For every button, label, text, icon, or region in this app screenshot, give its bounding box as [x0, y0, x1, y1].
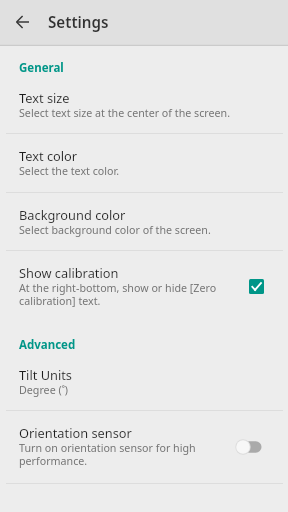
staticText: Orientation sensor — [19, 424, 132, 441]
staticText: Select the text color. — [19, 164, 120, 179]
staticText: At the right-bottom, show or hide [Zero … — [19, 281, 217, 308]
button[interactable]: Text size — [0, 78, 288, 133]
button[interactable]: Tilt Units — [0, 355, 288, 410]
staticText: Turn on orientation sensor for high perf… — [19, 441, 196, 468]
staticText: Background color — [19, 206, 126, 223]
staticText: General — [19, 60, 64, 76]
button[interactable]: Orientation sensor — [0, 411, 288, 483]
button[interactable]: Show calibration — [0, 251, 288, 324]
button[interactable]: Background color — [0, 193, 288, 250]
staticText: Show calibration — [19, 264, 119, 281]
button[interactable]: Text color — [0, 134, 288, 192]
staticText: Degree (˚) — [19, 383, 69, 398]
button[interactable]: Show calibration checkbox — [246, 276, 266, 296]
staticText: Select background color of the screen. — [19, 223, 211, 238]
staticText: Text color — [19, 147, 78, 164]
staticText: Select text size at the center of the sc… — [19, 106, 231, 121]
staticText: Text size — [19, 89, 70, 106]
staticText: Advanced — [19, 337, 76, 353]
staticText: Settings — [48, 12, 109, 33]
button[interactable]: Orientation sensor switch — [235, 437, 265, 457]
staticText: Tilt Units — [19, 366, 72, 383]
button[interactable]: Back — [9, 9, 35, 35]
